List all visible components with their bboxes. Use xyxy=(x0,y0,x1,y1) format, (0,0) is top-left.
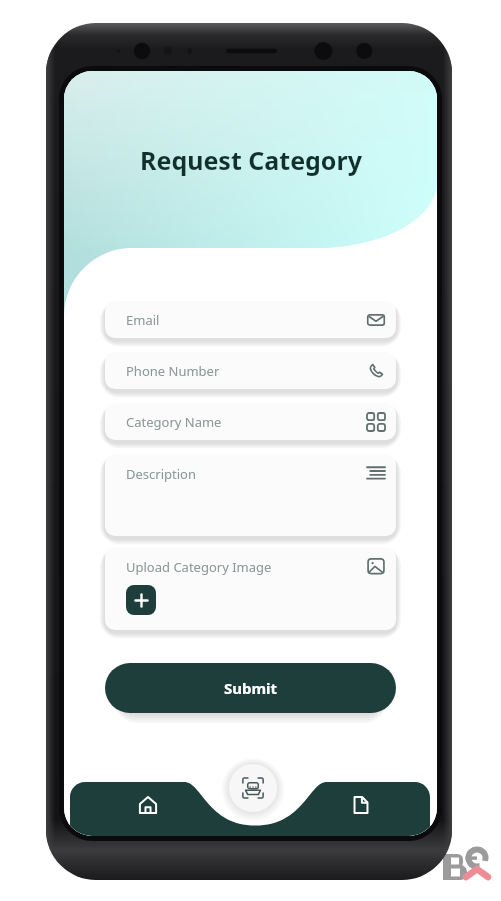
button[interactable]: Description xyxy=(105,454,396,536)
staticText: Description xyxy=(126,465,196,483)
button[interactable]: Documents xyxy=(341,785,381,825)
button[interactable]: Home xyxy=(128,785,168,825)
button[interactable]: Email xyxy=(105,301,396,338)
staticText: Submit xyxy=(224,678,278,698)
button[interactable]: Upload Category Image xyxy=(105,547,396,630)
staticText: Upload Category Image xyxy=(126,558,272,576)
staticText: Category Name xyxy=(126,413,222,431)
button[interactable]: Category Name xyxy=(105,403,396,440)
staticText: Email xyxy=(126,311,160,329)
button[interactable]: Add image xyxy=(126,585,156,615)
staticText: Request Category xyxy=(140,143,362,177)
staticText: Phone Number xyxy=(126,362,220,380)
button[interactable]: Submit xyxy=(105,663,396,713)
button[interactable]: Phone Number xyxy=(105,352,396,389)
button[interactable]: Scan xyxy=(229,764,277,812)
